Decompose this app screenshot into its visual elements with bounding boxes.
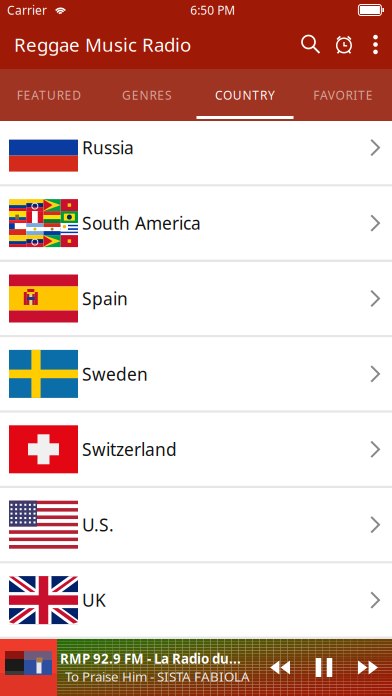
staticText: 6:50 PM	[190, 2, 235, 18]
button[interactable]: GENRES	[98, 69, 196, 121]
button[interactable]: U.S.	[0, 488, 392, 564]
button[interactable]: Pause	[302, 644, 346, 690]
staticText: Reggae Music Radio	[14, 32, 191, 57]
button[interactable]: RMP 92.9 FM - La Radio du...	[0, 639, 392, 696]
staticText: UK	[82, 589, 106, 612]
button[interactable]: Next	[346, 644, 390, 690]
button[interactable]: COUNTRY	[196, 69, 294, 121]
staticText: FAVORITE	[313, 87, 373, 103]
button[interactable]: Russia	[0, 121, 392, 187]
staticText: GENRES	[122, 87, 172, 103]
button[interactable]: Sleep timer	[327, 20, 360, 69]
button[interactable]: UK	[0, 564, 392, 639]
staticText: Switzerland	[82, 438, 177, 461]
button[interactable]: Spain	[0, 262, 392, 337]
staticText: FEATURED	[17, 87, 81, 103]
button[interactable]: Search	[294, 20, 327, 69]
staticText: Russia	[82, 136, 134, 159]
button[interactable]: FAVORITE	[294, 69, 392, 121]
staticText: Sweden	[82, 362, 148, 385]
staticText: Spain	[82, 287, 128, 310]
button[interactable]: Sweden	[0, 337, 392, 413]
staticText: South America	[82, 212, 201, 235]
staticText: Carrier	[7, 2, 47, 18]
staticText: COUNTRY	[215, 87, 275, 103]
staticText: RMP 92.9 FM - La Radio du...	[60, 650, 241, 667]
button[interactable]: Switzerland	[0, 413, 392, 488]
button[interactable]: FEATURED	[0, 69, 98, 121]
button[interactable]: South America	[0, 187, 392, 262]
button[interactable]: More options	[360, 20, 390, 69]
staticText: U.S.	[82, 513, 114, 536]
button[interactable]: Previous	[258, 644, 302, 690]
staticText: To Praise Him - SISTA FABIOLA	[65, 667, 250, 685]
